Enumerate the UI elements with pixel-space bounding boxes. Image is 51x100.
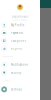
staticText: PREFERENCES bbox=[2, 56, 13, 58]
button[interactable]: Notifications bbox=[0, 61, 40, 69]
staticText: Security bbox=[11, 71, 21, 74]
staticText: SUPPORT bbox=[2, 80, 9, 82]
staticText: Notifications bbox=[11, 63, 28, 66]
button[interactable]: Categories bbox=[0, 37, 40, 45]
button[interactable]: Settings bbox=[0, 85, 40, 93]
button[interactable]: Security bbox=[0, 69, 40, 76]
staticText: Reports bbox=[11, 47, 22, 50]
button[interactable]: My Profile bbox=[0, 21, 40, 29]
button[interactable]: Reports bbox=[0, 45, 40, 52]
staticText: Lisa Johnson bbox=[11, 15, 28, 18]
staticText: Settings bbox=[11, 88, 22, 91]
staticText: Categories bbox=[11, 39, 26, 42]
button[interactable]: Payments bbox=[0, 29, 40, 37]
staticText: Payments bbox=[11, 31, 23, 35]
staticText: My Profile bbox=[11, 23, 25, 27]
